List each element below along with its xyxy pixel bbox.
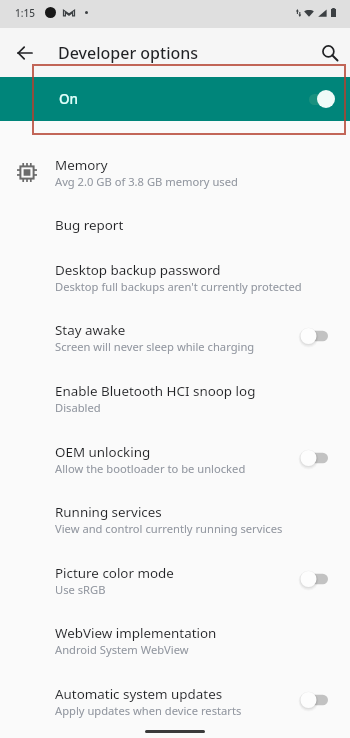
button[interactable]: Stay awake [0,311,350,372]
button[interactable]: WebView implementation [0,614,350,675]
button[interactable]: Enable Bluetooth HCI snoop log [0,372,350,433]
staticText: Enable Bluetooth HCI snoop log [55,382,256,400]
staticText: Automatic system updates [55,685,223,703]
button[interactable]: Automatic system updates [0,675,350,736]
staticText: Allow the bootloader to be unlocked [55,461,246,476]
staticText: Use sRGB [55,582,106,597]
button[interactable]: Desktop backup password [0,251,350,311]
staticText: Memory [55,156,108,174]
button[interactable]: Running services [0,493,350,554]
staticText: Picture color mode [55,564,174,582]
staticText: WebView implementation [55,624,217,642]
button[interactable]: Picture color mode [0,554,350,614]
staticText: Bug report [55,216,124,234]
staticText: Desktop backup password [55,261,221,279]
staticText: Apply updates when device restarts [55,703,242,718]
staticText: Disabled [55,400,101,415]
staticText: Running services [55,503,162,521]
button[interactable]: Memory [0,146,350,206]
staticText: On [59,90,79,108]
staticText: Desktop full backups aren't currently pr… [55,279,302,294]
button[interactable]: OEM unlocking [0,433,350,493]
button[interactable]: Bug report [0,206,350,251]
staticText: Android System WebView [55,642,189,657]
button[interactable]: On [0,77,350,121]
button[interactable]: Search [310,33,350,73]
staticText: Stay awake [55,321,126,339]
staticText: Avg 2.0 GB of 3.8 GB memory used [55,174,238,189]
button[interactable]: Back [0,28,49,77]
staticText: 1:15 [15,6,35,20]
staticText: Developer options [58,42,199,64]
staticText: Screen will never sleep while charging [55,339,255,354]
staticText: View and control currently running servi… [55,521,283,536]
staticText: OEM unlocking [55,443,151,461]
